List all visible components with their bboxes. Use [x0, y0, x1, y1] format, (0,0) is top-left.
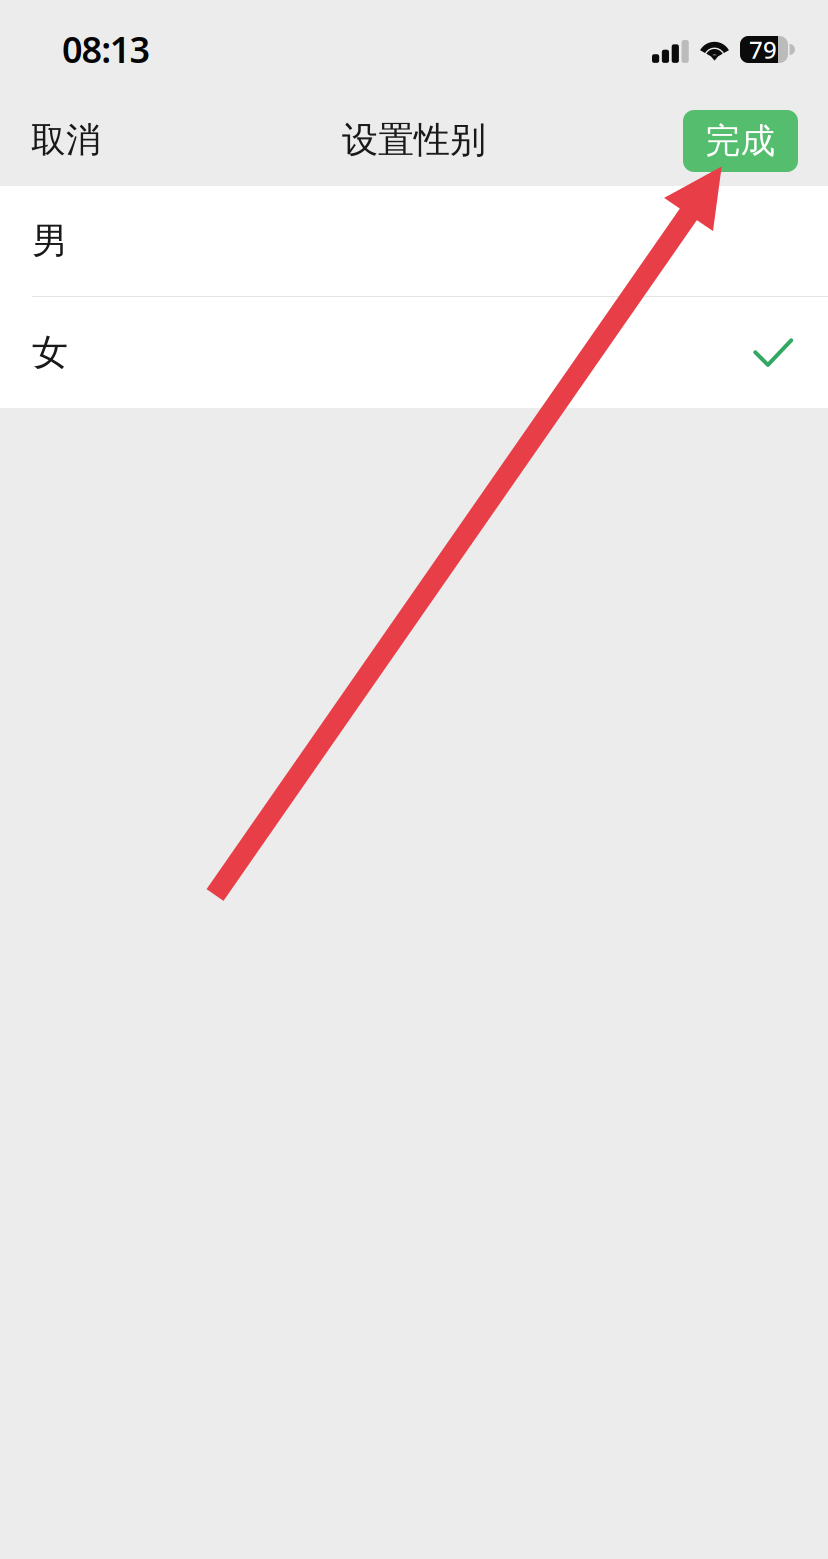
staticText: 79 [749, 34, 777, 65]
button[interactable]: 取消 [15, 91, 117, 189]
button[interactable]: 女 [0, 297, 828, 408]
button[interactable]: 男 [0, 186, 828, 297]
staticText: 设置性别 [342, 118, 486, 162]
staticText: 女 [32, 330, 68, 375]
staticText: 男 [32, 219, 68, 263]
staticText: 取消 [31, 119, 101, 161]
button[interactable]: 完成 [683, 110, 798, 172]
staticText: 08:13 [62, 25, 150, 73]
staticText: 完成 [705, 120, 775, 162]
